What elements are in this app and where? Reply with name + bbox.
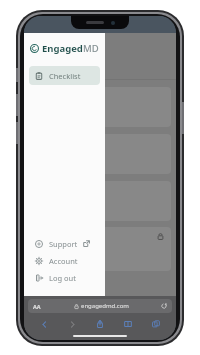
- staticText: engagedmd.com: [81, 302, 129, 310]
- button[interactable]: Support: [24, 235, 105, 252]
- staticText: Primary: [35, 253, 61, 263]
- staticText: Checklist: [49, 71, 81, 81]
- staticText: MD: [83, 42, 99, 55]
- button[interactable]: AA: [28, 299, 172, 313]
- staticText: Account: [49, 256, 78, 266]
- staticText: AA: [33, 303, 41, 310]
- staticText: Engaged: [45, 38, 84, 50]
- staticText: Checklist: [34, 60, 76, 74]
- staticText: MD: [84, 38, 99, 50]
- button[interactable]: Checklist: [29, 66, 100, 85]
- staticText: Engaged: [42, 42, 83, 55]
- button[interactable]: Forward: [58, 316, 86, 332]
- button[interactable]: Back: [30, 316, 58, 332]
- button[interactable]: Tabs: [142, 316, 170, 332]
- button[interactable]: Account: [24, 252, 105, 269]
- button[interactable]: Engaged: [30, 42, 99, 55]
- staticText: Log out: [49, 273, 76, 283]
- button[interactable]: Bookmarks: [114, 316, 142, 332]
- staticText: Support: [49, 239, 78, 249]
- button[interactable]: Share: [86, 316, 114, 332]
- button[interactable]: Log out: [24, 269, 105, 286]
